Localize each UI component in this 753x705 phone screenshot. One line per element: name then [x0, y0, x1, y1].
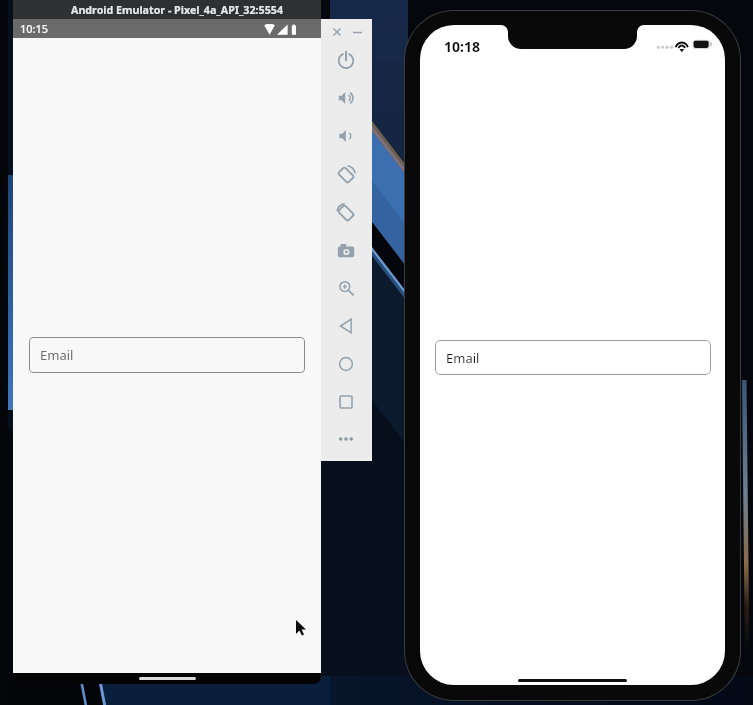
staticText: Email [446, 349, 480, 367]
staticText: Email [40, 346, 74, 364]
button[interactable]: Zoom [335, 277, 357, 299]
staticText: 10:18 [444, 37, 480, 56]
button[interactable]: Minimize [350, 24, 366, 40]
button[interactable]: More [335, 428, 357, 450]
button[interactable]: Power [335, 49, 357, 71]
button[interactable]: Rotate right [335, 201, 357, 223]
button[interactable]: Rotate left [335, 163, 357, 185]
button[interactable]: Email [29, 337, 305, 373]
staticText: Android Emulator - Pixel_4a_API_32:5554 [71, 3, 284, 18]
button[interactable]: Overview [335, 391, 357, 413]
button[interactable]: Close [329, 24, 345, 40]
button[interactable]: Volume up [335, 87, 357, 109]
button[interactable]: Home [335, 353, 357, 375]
button[interactable]: Screenshot [335, 239, 357, 261]
button[interactable]: Back [335, 315, 357, 337]
button[interactable]: Email [435, 340, 711, 375]
button[interactable]: Volume down [335, 125, 357, 147]
staticText: 10:15 [20, 21, 49, 36]
